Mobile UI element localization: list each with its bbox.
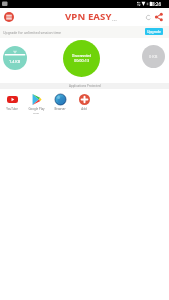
staticText: Upgrade xyxy=(147,29,161,34)
staticText: Upgrade for unlimited session time xyxy=(3,30,62,35)
staticText: ... xyxy=(112,15,117,23)
button[interactable]: Upgrade xyxy=(145,28,163,35)
button[interactable]: Menu xyxy=(4,12,14,22)
staticText: Add xyxy=(81,107,87,111)
button[interactable]: Browser xyxy=(48,89,72,117)
staticText: VPN EASY xyxy=(65,10,112,23)
button[interactable]: Disconnected xyxy=(63,40,100,77)
button[interactable]: YouTube xyxy=(0,89,24,117)
staticText: 1.4 KB xyxy=(9,59,21,64)
button[interactable]: 0 KB xyxy=(142,45,165,68)
button[interactable]: Refresh xyxy=(144,13,153,22)
button[interactable]: Google Play xyxy=(24,89,48,117)
staticText: Browser xyxy=(54,107,66,111)
staticText: Applications Protected xyxy=(69,84,101,88)
button[interactable]: Upgrade for unlimited session time xyxy=(0,26,169,38)
button[interactable]: 1.4 KB xyxy=(3,46,27,70)
staticText: 0 KB xyxy=(149,54,158,59)
staticText: 00:00:13 xyxy=(74,58,90,63)
staticText: Store xyxy=(33,111,39,114)
staticText: YouTube xyxy=(6,107,18,111)
staticText: 8:26 xyxy=(152,1,162,7)
button[interactable]: Share xyxy=(154,12,164,22)
button[interactable]: Add xyxy=(72,89,96,117)
staticText: Disconnected xyxy=(72,54,92,58)
staticText: Google Play xyxy=(28,107,45,111)
